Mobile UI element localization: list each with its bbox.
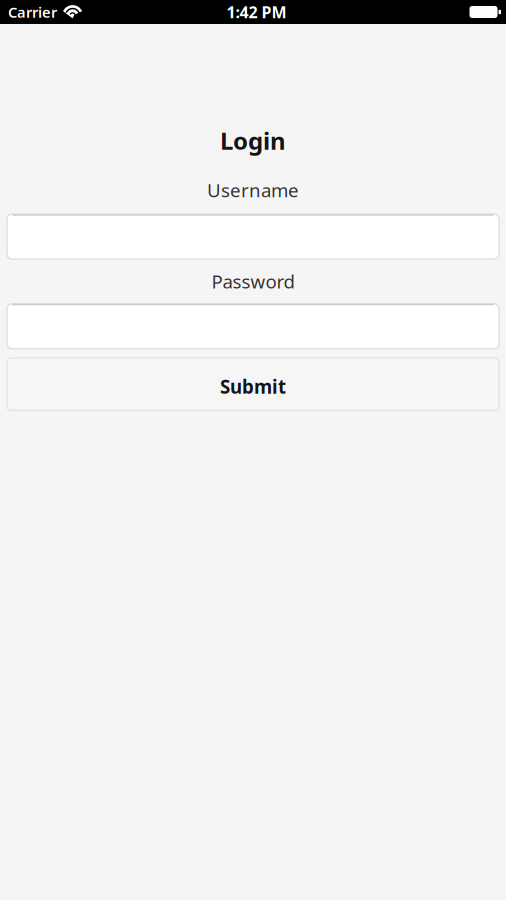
staticText: Login [220,124,286,156]
staticText: Submit [220,374,286,399]
button[interactable]: Submit [7,358,499,410]
staticText: Carrier [8,2,57,22]
staticText: 1:42 PM [226,1,286,23]
staticText: Password [211,269,294,294]
button[interactable]: Password [7,304,499,349]
staticText: Username [207,178,299,202]
button[interactable]: Username [7,214,499,259]
